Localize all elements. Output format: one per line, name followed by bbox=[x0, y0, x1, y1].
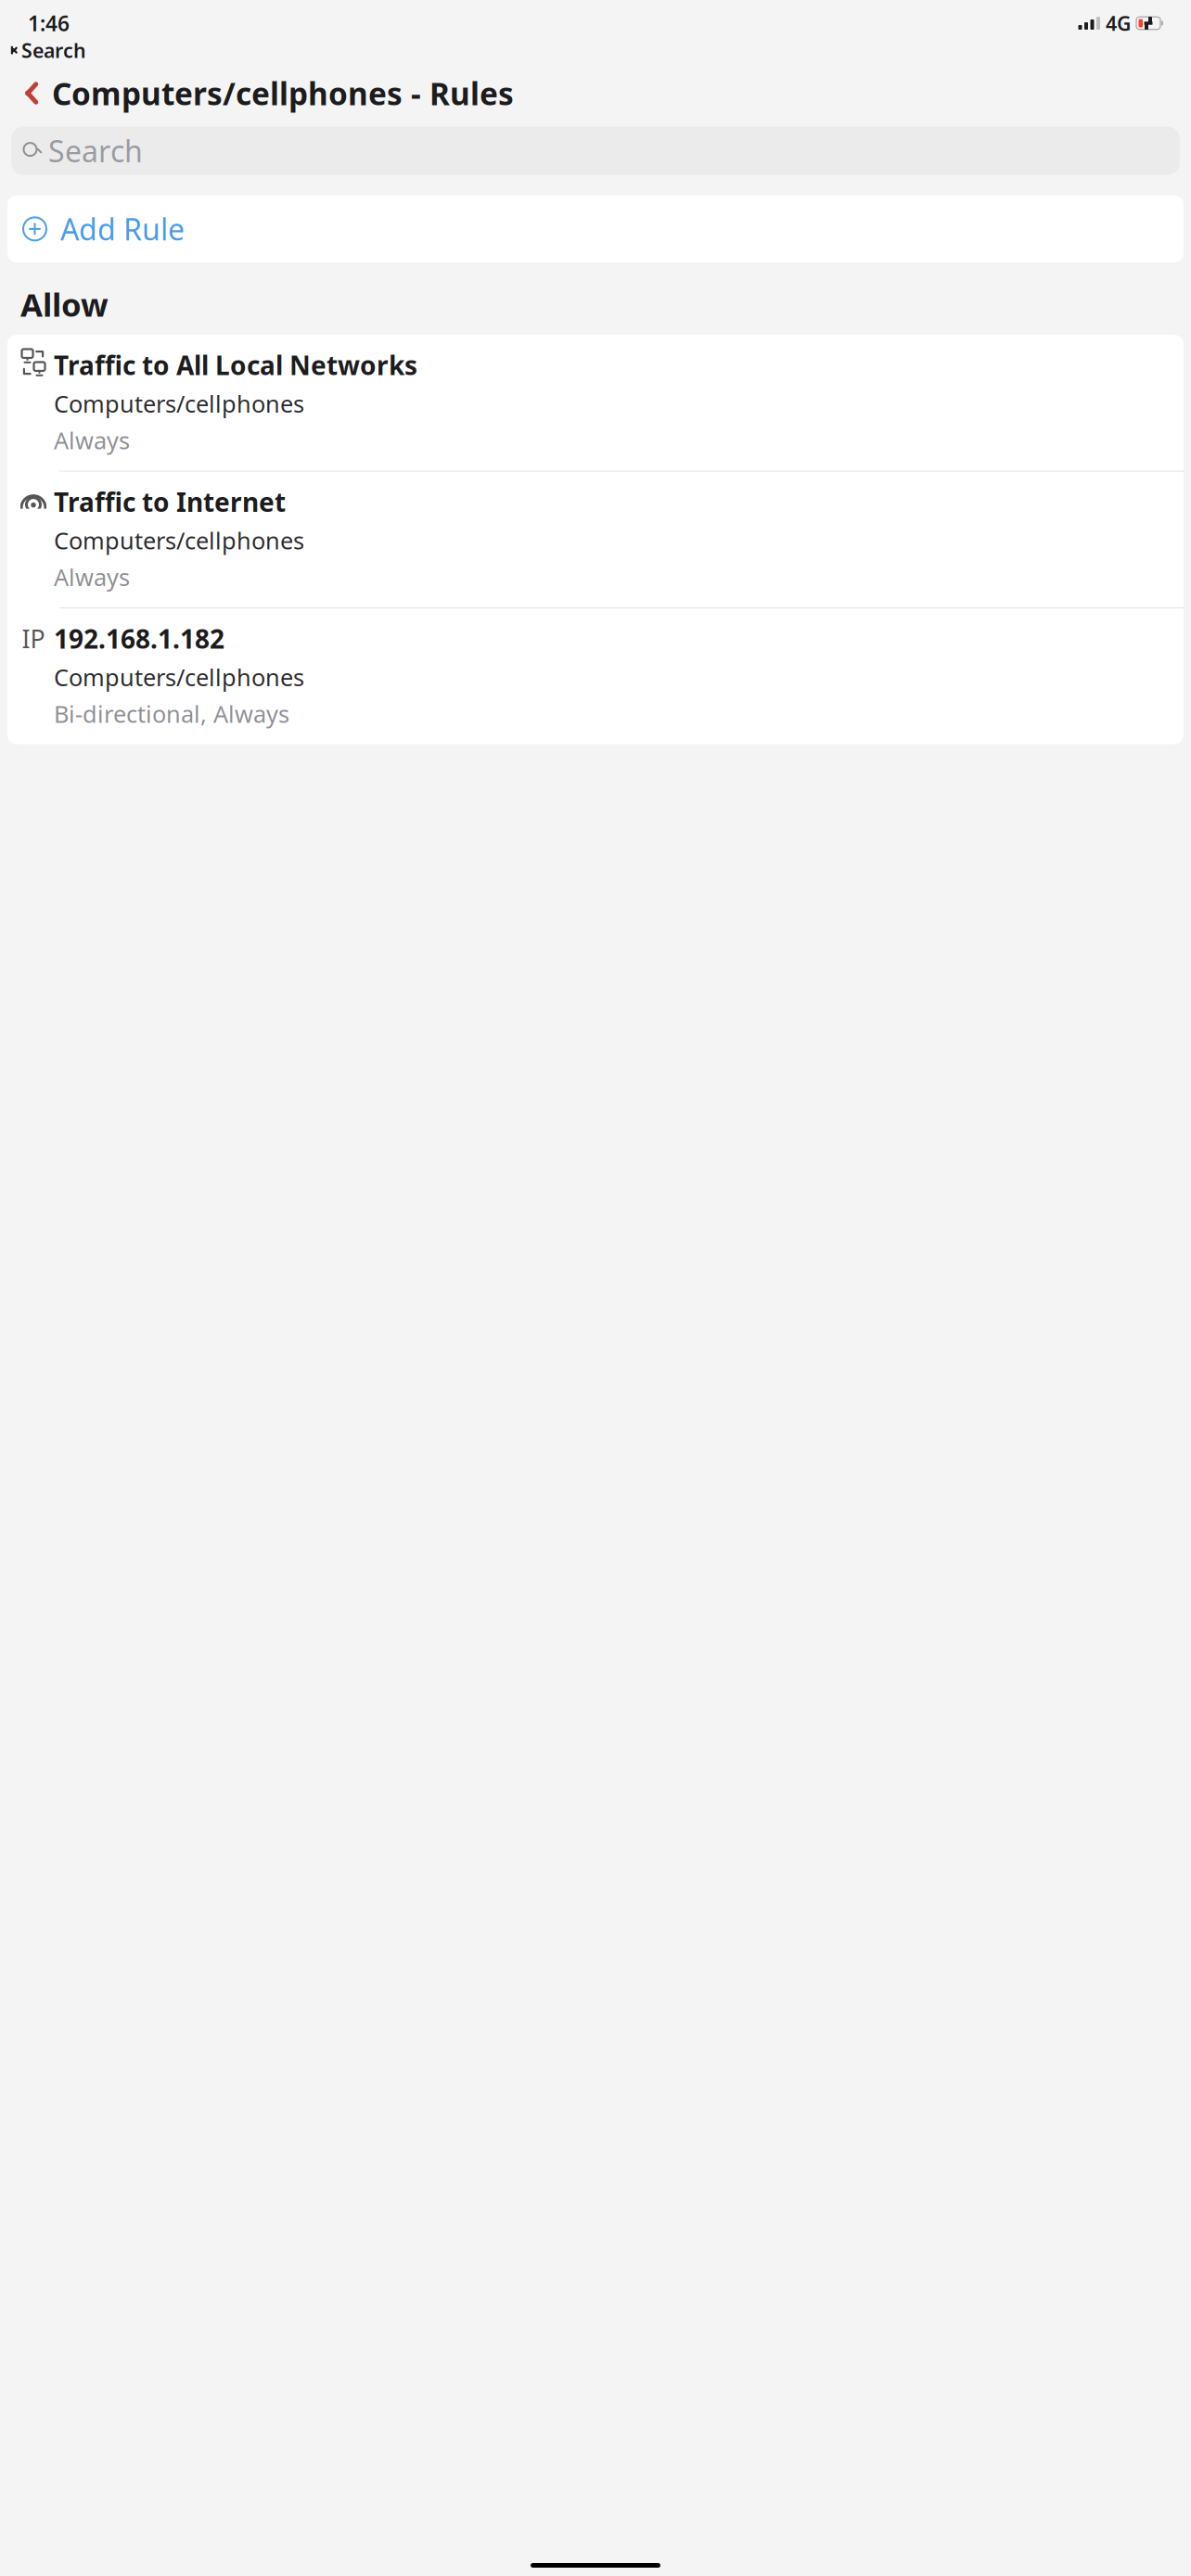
staticText: Add Rule bbox=[60, 209, 185, 249]
staticText: Computers/cellphones bbox=[54, 661, 304, 692]
staticText: 192.168.1.182 bbox=[54, 621, 224, 656]
staticText: Computers/cellphones - Rules bbox=[52, 73, 514, 114]
staticText: Computers/cellphones bbox=[54, 388, 304, 419]
staticText: Search bbox=[48, 131, 143, 170]
button[interactable]: Back bbox=[7, 73, 48, 114]
button[interactable]: Traffic to All Local Networks bbox=[7, 335, 1184, 471]
staticText: Always bbox=[54, 561, 130, 593]
staticText: 4G bbox=[1106, 10, 1131, 36]
button[interactable]: Add Rule bbox=[7, 195, 1184, 263]
staticText: Computers/cellphones bbox=[54, 525, 304, 556]
staticText: IP bbox=[22, 622, 45, 655]
staticText: Traffic to Internet bbox=[54, 485, 286, 519]
button[interactable]: IP bbox=[7, 608, 1184, 744]
staticText: Bi-directional, Always bbox=[54, 698, 289, 729]
staticText: Allow bbox=[20, 283, 109, 326]
staticText: Traffic to All Local Networks bbox=[54, 348, 417, 382]
staticText: Search bbox=[21, 37, 86, 63]
button[interactable]: Traffic to Internet bbox=[7, 472, 1184, 607]
staticText: 1:46 bbox=[28, 9, 70, 37]
staticText: Always bbox=[54, 425, 130, 456]
button[interactable]: Search bbox=[11, 127, 1180, 175]
